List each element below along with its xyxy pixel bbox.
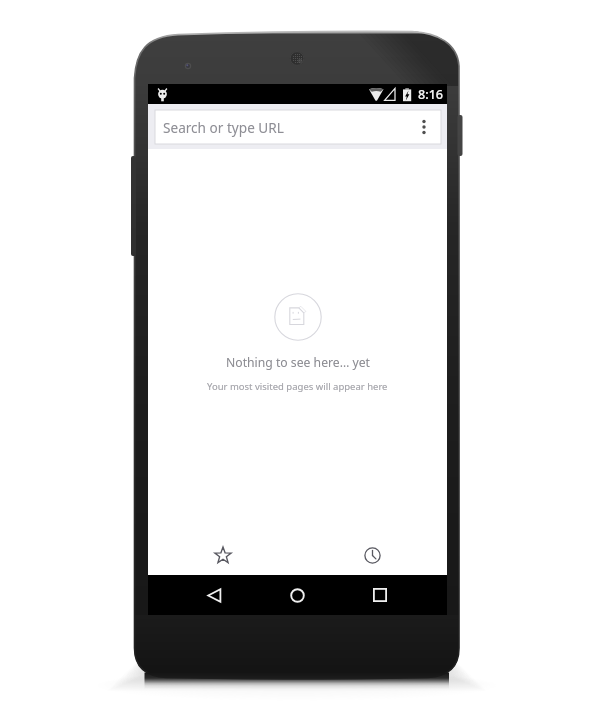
staticText: Nothing to see here… yet bbox=[226, 354, 370, 371]
button[interactable]: Search or type URL bbox=[155, 110, 441, 144]
staticText: Search or type URL bbox=[163, 118, 284, 137]
staticText: 8:16 bbox=[418, 86, 444, 103]
button[interactable]: Back bbox=[194, 575, 234, 615]
button[interactable]: More options bbox=[407, 110, 441, 144]
button[interactable]: Recents bbox=[360, 575, 400, 615]
button[interactable]: History bbox=[352, 535, 392, 575]
button[interactable]: Bookmarks bbox=[203, 535, 243, 575]
staticText: Your most visited pages will appear here bbox=[207, 380, 388, 393]
button[interactable]: Home bbox=[277, 575, 317, 615]
